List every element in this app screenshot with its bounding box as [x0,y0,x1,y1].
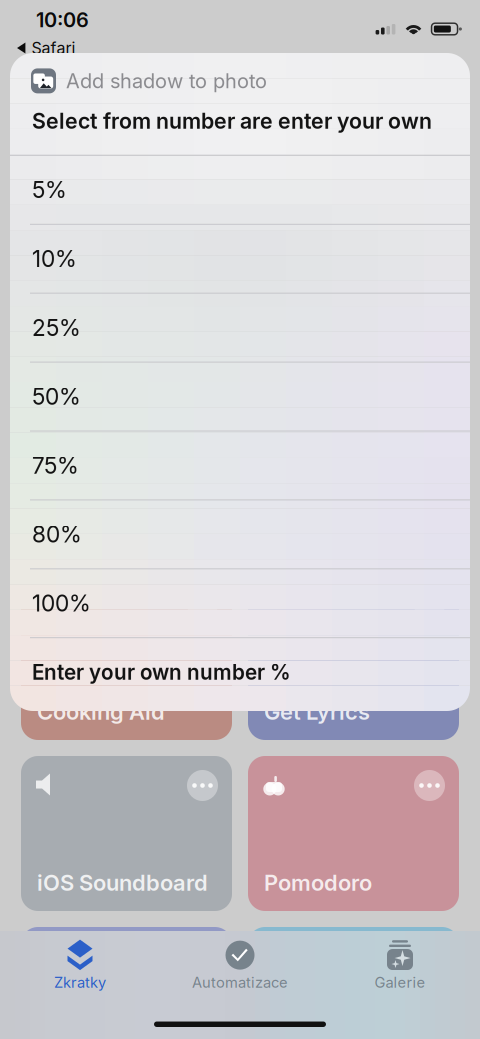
button[interactable]: Cooking Aid [21,585,232,740]
button[interactable]: 75% [10,431,470,499]
button[interactable]: Zkratky [0,939,160,991]
staticText: 50% [32,383,81,410]
button[interactable]: 5% [10,156,470,224]
button[interactable]: 25% [10,294,470,362]
staticText: Zkratky [54,974,106,991]
staticText: Safari [31,38,75,58]
button[interactable]: Galerie [320,939,480,991]
staticText: Select from number are enter your own [32,108,432,134]
button[interactable]: Get Lyrics [248,585,459,740]
staticText: 10:06 [36,8,89,32]
staticText: Pomodoro [264,869,372,896]
button[interactable]: 100% [10,569,470,637]
staticText: 100% [32,589,91,617]
button[interactable]: Safari [0,38,480,58]
staticText: 25% [32,314,81,341]
staticText: 80% [32,521,82,548]
staticText: Get Lyrics [264,698,370,725]
staticText: 5% [32,176,67,203]
button[interactable] [248,927,459,1039]
staticText: iOS Soundboard [37,869,208,896]
staticText: Automatizace [192,974,288,991]
button[interactable]: 80% [10,500,470,568]
button[interactable]: iOS Soundboard [21,756,232,911]
staticText: Cooking Aid [37,698,165,725]
button[interactable] [21,927,232,1039]
button[interactable]: 10% [10,225,470,293]
button[interactable]: 50% [10,363,470,430]
button[interactable]: Pomodoro [248,756,459,911]
button[interactable]: Enter your own number % [10,638,470,706]
staticText: Enter your own number % [32,660,291,685]
staticText: Galerie [374,974,425,991]
staticText: 10% [32,245,77,272]
staticText: 75% [32,452,79,479]
staticText: Add shadow to photo [66,69,267,93]
button[interactable]: Automatizace [160,939,320,991]
